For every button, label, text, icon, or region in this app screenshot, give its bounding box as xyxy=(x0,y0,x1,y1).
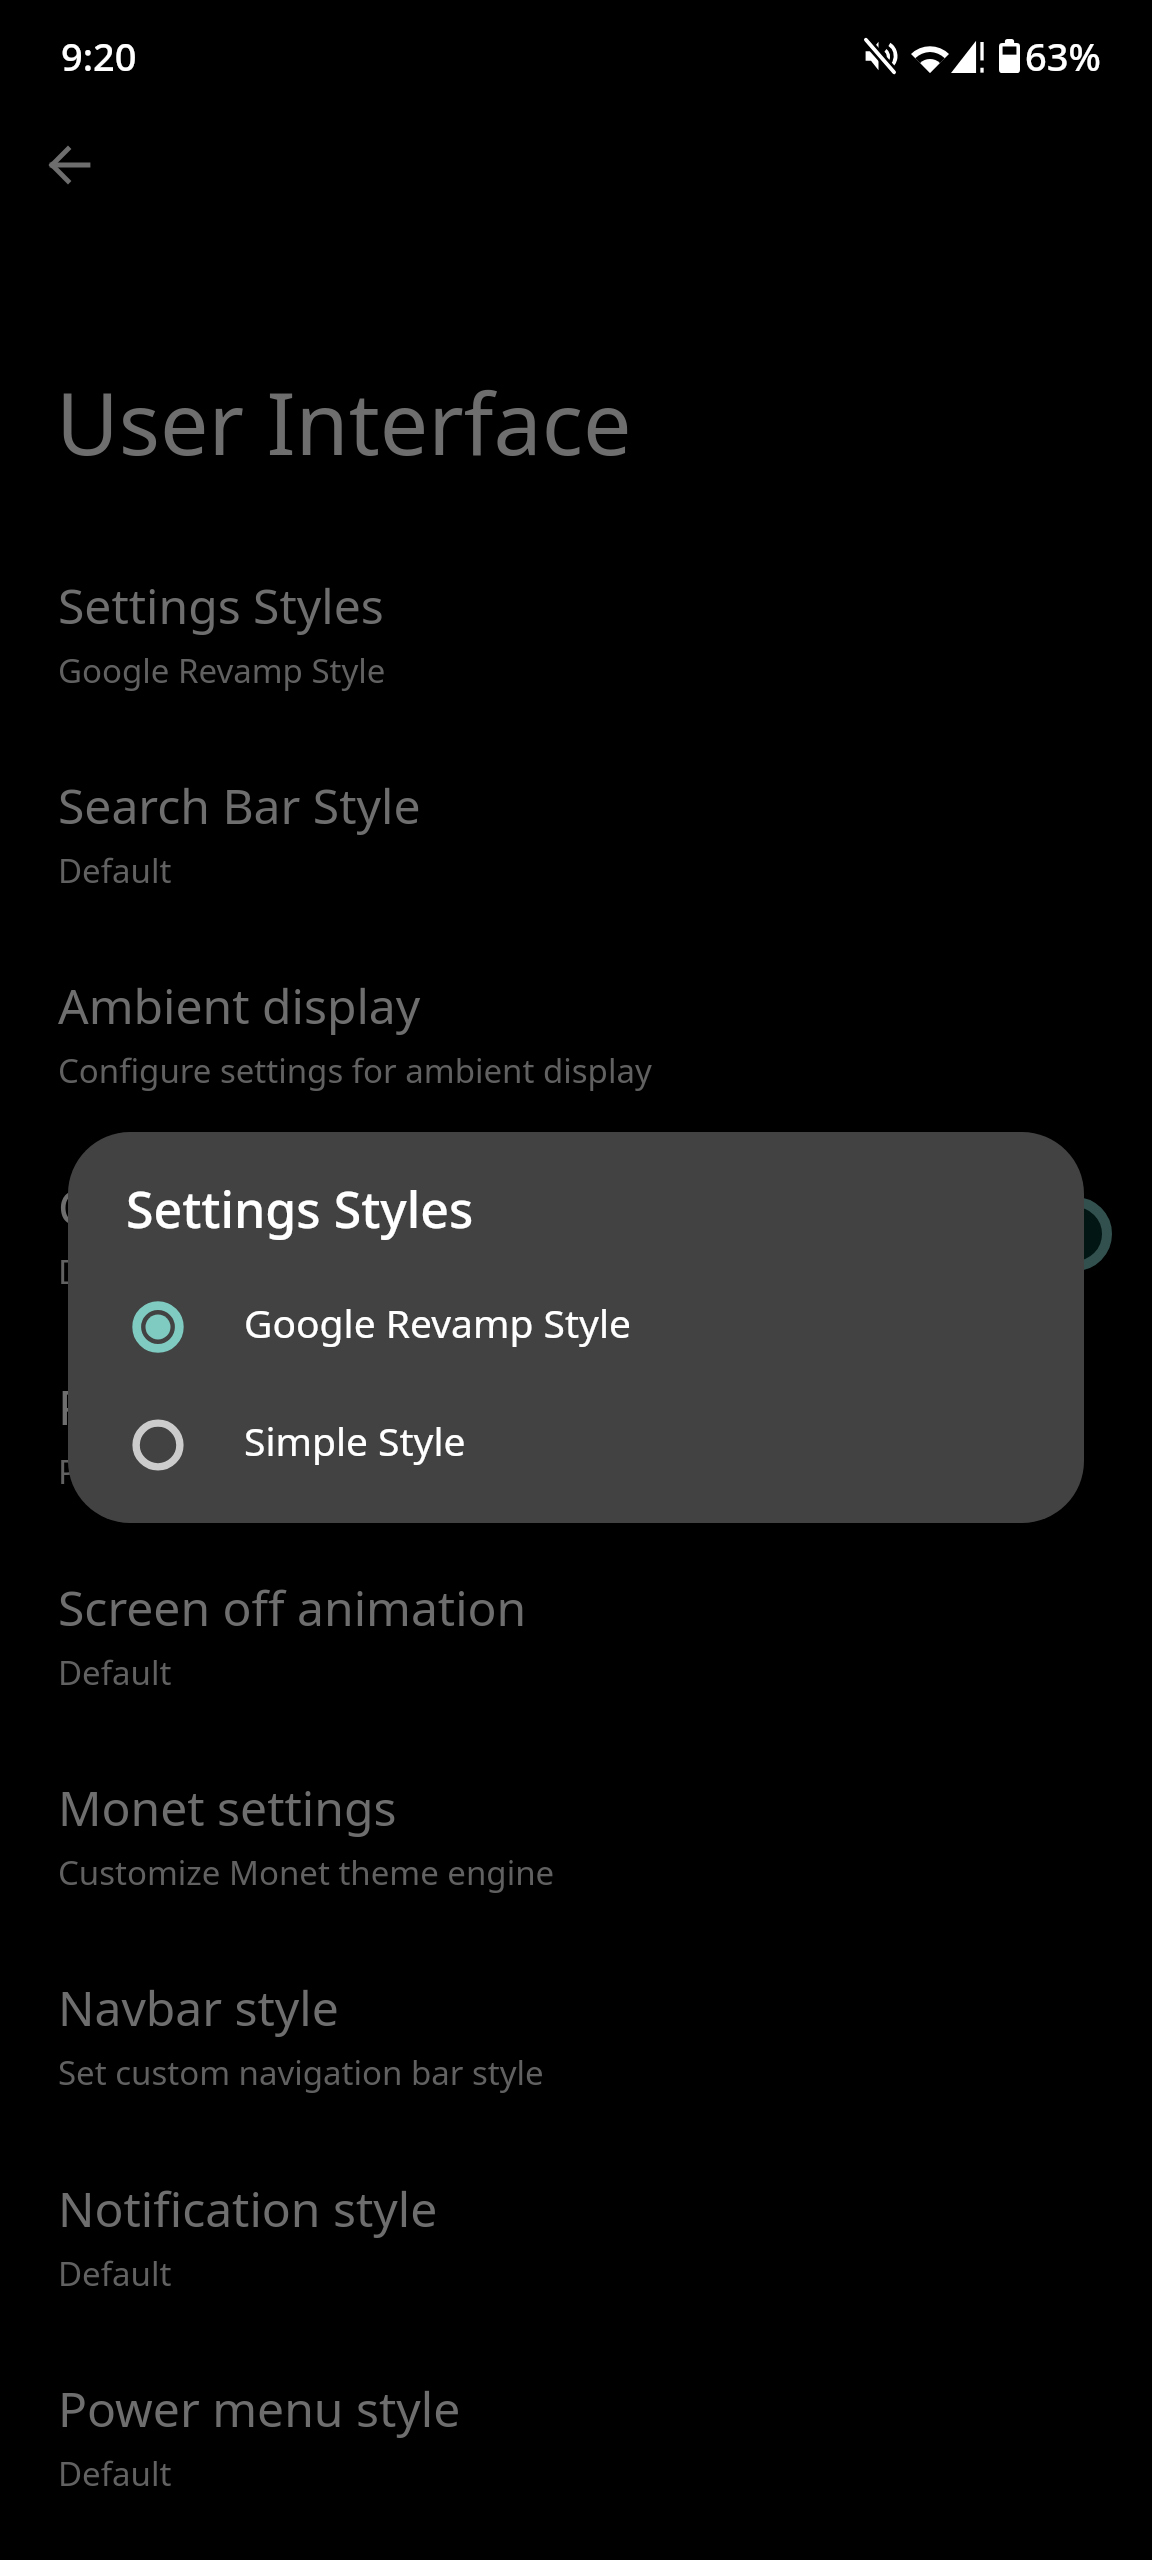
staticText: Pulse on new notifications xyxy=(58,1449,464,1494)
staticText: Screen off animation xyxy=(58,1575,527,1640)
staticText: Monet settings xyxy=(58,1775,397,1840)
button[interactable]: Notification style xyxy=(0,2168,1152,2338)
staticText: 9:20 xyxy=(61,30,137,82)
button[interactable]: Monet settings xyxy=(0,1767,1152,1937)
staticText: Set custom navigation bar style xyxy=(58,2050,544,2095)
staticText: Default xyxy=(58,1650,172,1695)
staticText: Google Revamp Style xyxy=(244,1296,631,1349)
button[interactable]: Back xyxy=(18,118,110,210)
button[interactable]: Ambient display xyxy=(0,965,1152,1135)
staticText: Search Bar Style xyxy=(58,773,421,838)
button[interactable]: Pulse edge light xyxy=(0,1366,1152,1536)
staticText: Default xyxy=(58,2451,172,2496)
staticText: Ambient display xyxy=(58,973,421,1038)
staticText: Pulse edge light xyxy=(58,1374,419,1439)
staticText: Power menu style xyxy=(58,2376,461,2441)
staticText: User Interface xyxy=(56,363,632,480)
staticText: 63% xyxy=(1025,30,1101,82)
button[interactable]: Clock style xyxy=(0,1166,1152,1336)
staticText: Notification style xyxy=(58,2176,438,2241)
staticText: Clock style xyxy=(58,1174,296,1239)
staticText: Settings Styles xyxy=(126,1175,474,1243)
button[interactable]: Navbar style xyxy=(0,1967,1152,2137)
staticText: Google Revamp Style xyxy=(58,648,386,693)
staticText: Configure settings for ambient display xyxy=(58,1048,652,1093)
staticText: Default xyxy=(58,848,172,893)
button[interactable]: Simple Style xyxy=(68,1386,1084,1503)
button[interactable]: Google Revamp Style xyxy=(68,1268,1084,1385)
button[interactable]: Screen off animation xyxy=(0,1567,1152,1737)
staticText: Customize Monet theme engine xyxy=(58,1850,555,1895)
staticText: Simple Style xyxy=(244,1414,466,1467)
staticText: Default xyxy=(58,2251,172,2296)
button[interactable]: Settings Styles xyxy=(0,565,1152,735)
button[interactable]: Power menu style xyxy=(0,2368,1152,2538)
staticText: Default xyxy=(58,1249,172,1294)
staticText: Settings Styles xyxy=(58,573,384,638)
button[interactable]: Search Bar Style xyxy=(0,765,1152,935)
staticText: Navbar style xyxy=(58,1975,339,2040)
